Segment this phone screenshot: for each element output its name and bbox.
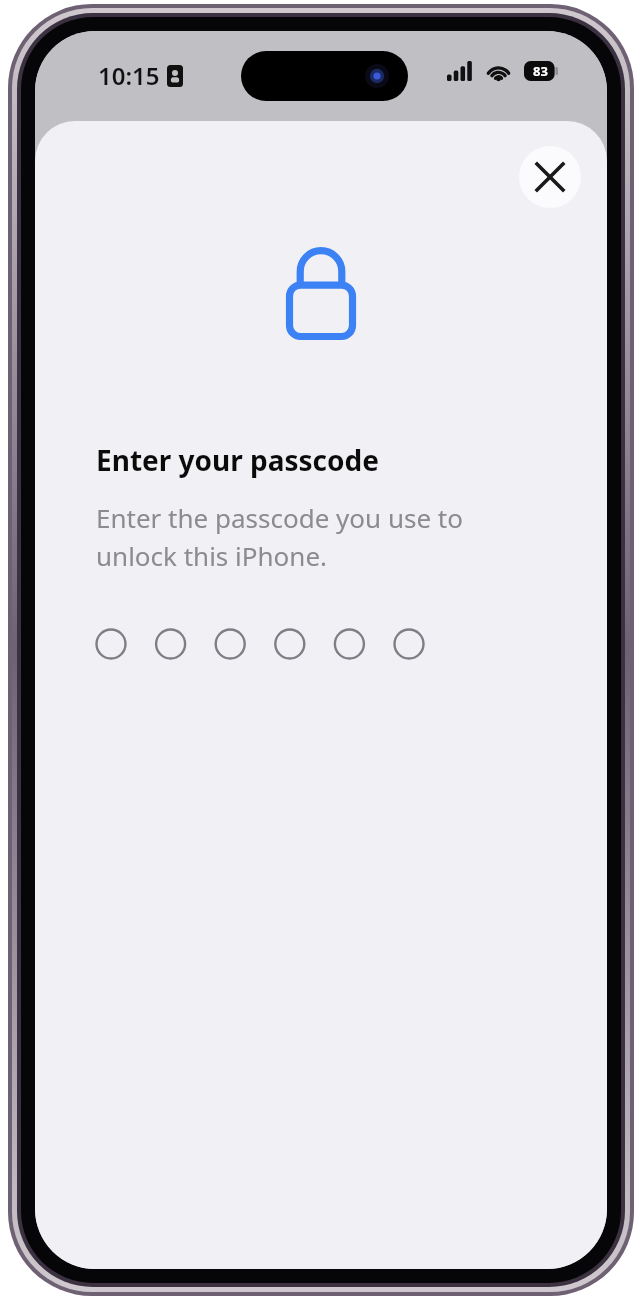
button[interactable]: Passcode entry field (96, 621, 476, 667)
staticText: 83 (533, 62, 548, 80)
staticText: Enter the passcode you use to unlock thi… (96, 500, 516, 573)
staticText: 10:15 (98, 59, 160, 92)
button[interactable]: Close (519, 146, 581, 208)
staticText: Enter your passcode (96, 441, 379, 479)
